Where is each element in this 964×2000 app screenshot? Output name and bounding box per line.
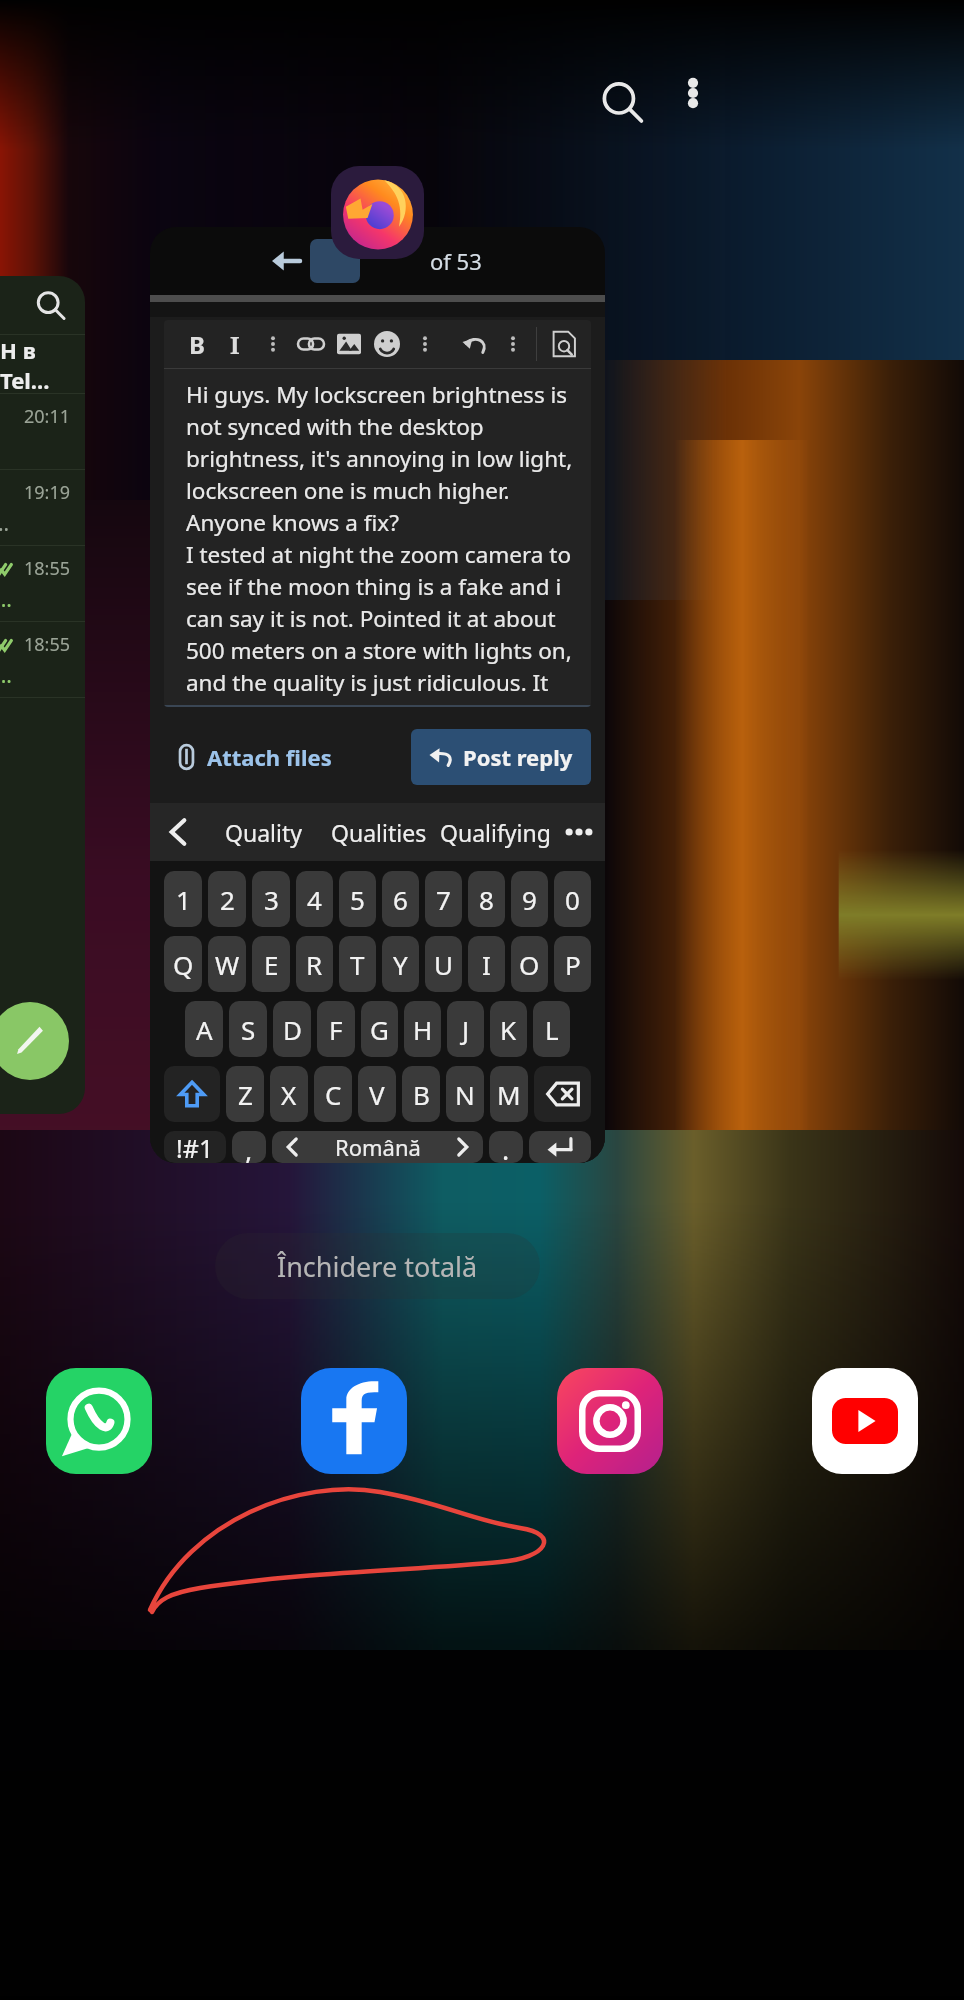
button[interactable]: N — [446, 1066, 484, 1122]
button[interactable]: H — [404, 1001, 441, 1057]
button[interactable]: Închidere totală — [215, 1233, 540, 1299]
button[interactable]: Bold — [178, 322, 216, 366]
staticText: 3 — [264, 882, 279, 917]
button[interactable]: Previous suggestions — [150, 803, 206, 861]
button[interactable]: Insert link — [292, 322, 330, 366]
button[interactable]: More options — [663, 63, 723, 123]
staticText: W — [215, 947, 240, 982]
button[interactable]: WhatsApp — [46, 1368, 152, 1474]
button[interactable]: L — [533, 1001, 570, 1057]
button[interactable]: 3 — [252, 871, 290, 927]
button[interactable]: Space, Română — [272, 1131, 483, 1163]
button[interactable]: . — [489, 1131, 523, 1163]
staticText: G — [370, 1012, 389, 1047]
button[interactable]: YouTube — [812, 1368, 918, 1474]
button[interactable]: Н в Tel… — [0, 276, 85, 1114]
button[interactable]: Attach files — [164, 734, 346, 780]
button[interactable]: 2 — [208, 871, 246, 927]
button[interactable]: J — [447, 1001, 484, 1057]
button[interactable]: Qualities — [321, 803, 437, 861]
button[interactable]: Z — [226, 1066, 264, 1122]
button[interactable]: !#1 — [164, 1131, 226, 1163]
staticText: A — [196, 1012, 213, 1047]
button[interactable]: Insert emoji — [368, 322, 406, 366]
button[interactable]: Undo — [456, 322, 494, 366]
button[interactable]: Shift — [164, 1066, 220, 1122]
button[interactable]: of 53 — [150, 227, 605, 1163]
button[interactable]: More suggestions — [553, 803, 605, 861]
button[interactable]: Enter — [529, 1131, 591, 1163]
button[interactable]: 9 — [511, 871, 548, 927]
staticText: 0 — [565, 882, 580, 917]
staticText: Română — [335, 1132, 421, 1162]
button[interactable]: F — [317, 1001, 355, 1057]
button[interactable]: Y — [382, 936, 419, 992]
staticText: L — [545, 1012, 559, 1047]
button[interactable]: 4 — [296, 871, 333, 927]
staticText: B — [189, 328, 205, 361]
button[interactable]: More text options — [254, 322, 292, 366]
button[interactable]: C — [314, 1066, 352, 1122]
button[interactable]: Q — [164, 936, 202, 992]
button[interactable]: Italic — [216, 322, 254, 366]
staticText: Z — [238, 1077, 253, 1112]
staticText: K — [500, 1012, 517, 1047]
staticText: Qualifying — [440, 817, 551, 848]
button[interactable]: 7 — [425, 871, 462, 927]
button[interactable]: U — [425, 936, 462, 992]
button[interactable]: 5 — [339, 871, 376, 927]
staticText: 20:11 — [24, 404, 71, 429]
staticText: S — [241, 1012, 256, 1047]
button[interactable]: Facebook — [301, 1368, 407, 1474]
button[interactable]: Backspace — [534, 1066, 591, 1122]
button[interactable]: D — [273, 1001, 311, 1057]
button[interactable]: I — [468, 936, 505, 992]
button[interactable]: P — [554, 936, 591, 992]
staticText: Y — [393, 947, 408, 982]
staticText: J — [462, 1012, 470, 1047]
button[interactable]: K — [490, 1001, 527, 1057]
staticText: 6 — [393, 882, 408, 917]
button[interactable]: Insert image — [330, 322, 368, 366]
staticText: Quality — [225, 817, 302, 848]
button[interactable]: Instagram — [557, 1368, 663, 1474]
button[interactable]: , — [232, 1131, 266, 1163]
button[interactable]: 1 — [164, 871, 202, 927]
staticText: I — [482, 947, 491, 982]
button[interactable]: V — [358, 1066, 396, 1122]
button[interactable]: O — [511, 936, 548, 992]
button[interactable]: Search — [583, 63, 661, 141]
staticText: Q — [173, 947, 194, 982]
button[interactable]: 6 — [382, 871, 419, 927]
button[interactable]: R — [296, 936, 333, 992]
button[interactable]: X — [270, 1066, 308, 1122]
button[interactable]: E — [252, 936, 290, 992]
staticText: of 53 — [430, 246, 482, 276]
button[interactable]: Preview — [545, 322, 583, 366]
button[interactable]: Quality — [206, 803, 321, 861]
button[interactable]: Compose — [0, 1002, 69, 1080]
button[interactable]: M — [490, 1066, 528, 1122]
button[interactable]: 8 — [468, 871, 505, 927]
staticText: E — [264, 947, 279, 982]
staticText: 5 — [350, 882, 365, 917]
button[interactable]: B — [402, 1066, 440, 1122]
button[interactable]: T — [339, 936, 376, 992]
button[interactable]: W — [208, 936, 246, 992]
staticText: H — [413, 1012, 433, 1047]
button[interactable]: A — [185, 1001, 223, 1057]
button[interactable]: Firefox — [331, 166, 424, 259]
button[interactable]: Post reply — [411, 729, 591, 785]
staticText: Н в Tel… — [0, 335, 85, 393]
staticText: B — [413, 1077, 430, 1112]
button[interactable]: Qualifying — [437, 803, 553, 861]
button[interactable]: S — [229, 1001, 267, 1057]
button[interactable]: 0 — [554, 871, 591, 927]
button[interactable]: More actions — [494, 322, 532, 366]
button[interactable]: More insert options — [406, 322, 444, 366]
staticText: 18:55 — [24, 556, 71, 581]
staticText: T — [350, 947, 365, 982]
staticText: X — [281, 1077, 297, 1112]
staticText: Închidere totală — [277, 1248, 478, 1285]
button[interactable]: G — [361, 1001, 398, 1057]
